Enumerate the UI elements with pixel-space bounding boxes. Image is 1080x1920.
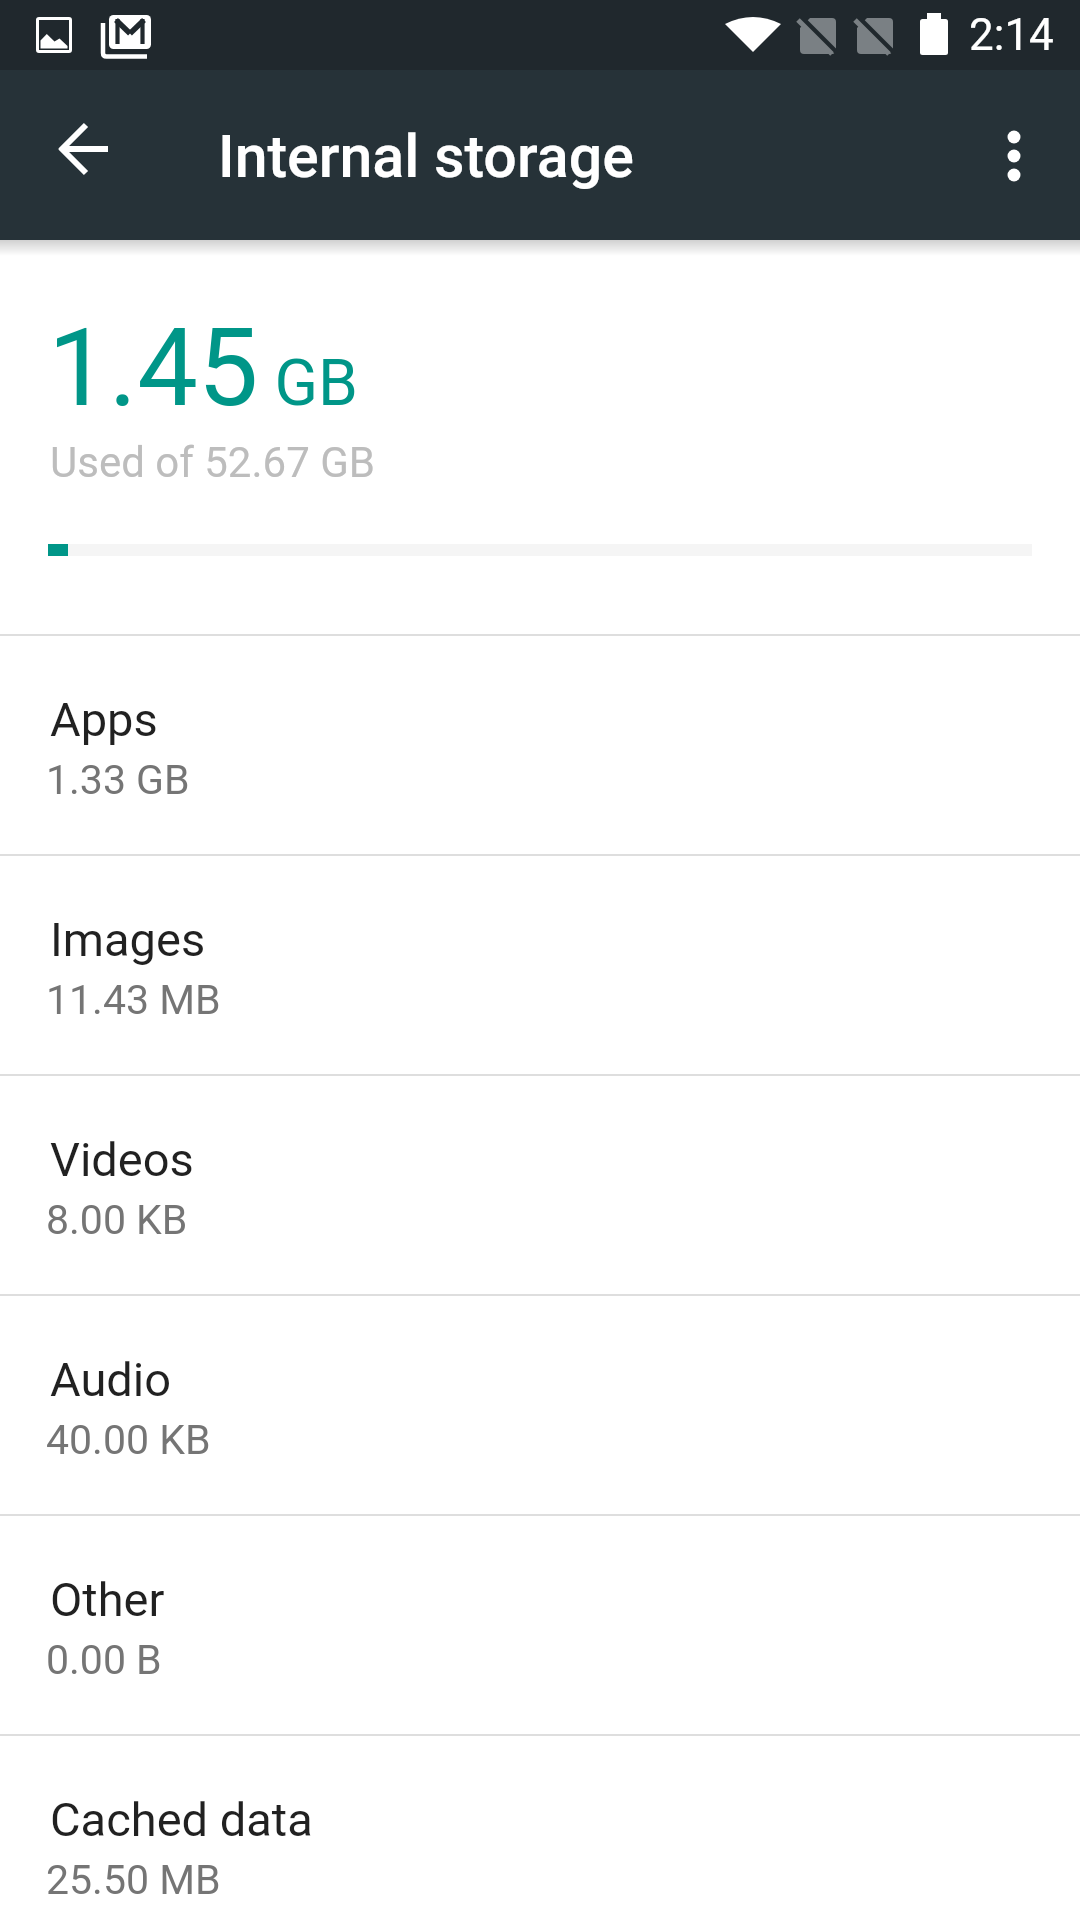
staticText: Used of 52.67 GB — [50, 438, 375, 487]
button[interactable]: Apps — [0, 634, 1080, 854]
staticText: 1.45 GB — [48, 305, 358, 432]
button[interactable]: Audio — [0, 1294, 1080, 1514]
staticText: 1.33 GB — [46, 756, 190, 804]
button[interactable]: Images — [0, 854, 1080, 1074]
staticText: Cached data — [50, 1792, 313, 1847]
button[interactable] — [40, 110, 130, 200]
staticText: 25.50 MB — [46, 1856, 221, 1904]
staticText: 11.43 MB — [46, 976, 221, 1024]
staticText: 0.00 B — [46, 1636, 162, 1684]
button[interactable]: Other — [0, 1514, 1080, 1734]
staticText: 8.00 KB — [46, 1196, 188, 1244]
staticText: Videos — [50, 1132, 194, 1187]
button[interactable]: Cached data — [0, 1734, 1080, 1920]
button[interactable]: Videos — [0, 1074, 1080, 1294]
staticText: 2:14 — [969, 9, 1054, 61]
staticText: 40.00 KB — [46, 1416, 211, 1464]
button[interactable] — [974, 102, 1054, 208]
staticText: Images — [50, 912, 206, 967]
staticText: Internal storage — [218, 122, 634, 191]
staticText: Apps — [50, 692, 158, 747]
staticText: Other — [50, 1572, 165, 1627]
staticText: Audio — [50, 1352, 172, 1407]
